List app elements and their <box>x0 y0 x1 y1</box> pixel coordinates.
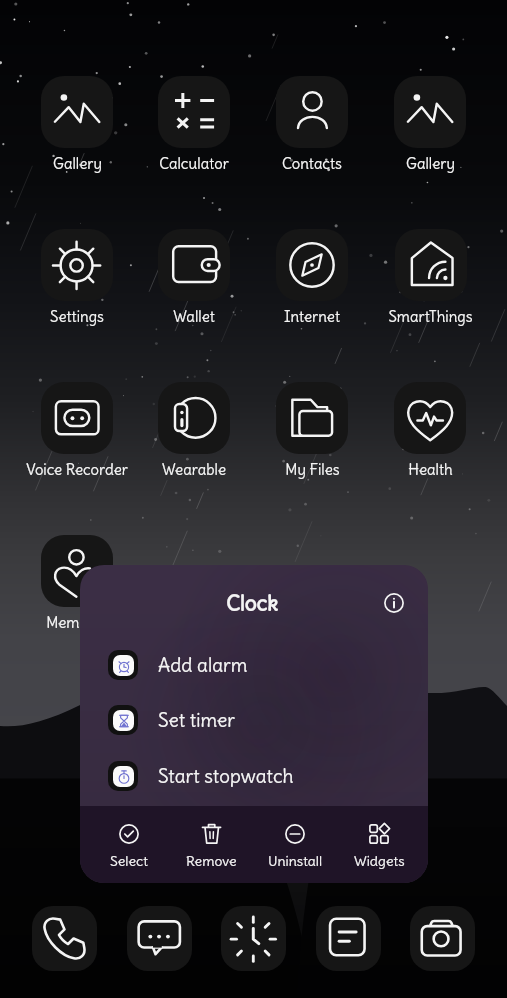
staticText: Contacts <box>282 154 342 173</box>
button[interactable]: Select <box>87 806 170 883</box>
button[interactable]: My Files <box>276 382 348 479</box>
button[interactable]: Start stopwatch <box>80 748 428 804</box>
button[interactable]: Widgets <box>337 806 421 883</box>
staticText: Uninstall <box>268 852 323 870</box>
staticText: SmartThings <box>388 307 473 326</box>
button[interactable]: Contacts <box>276 76 348 173</box>
button[interactable]: SmartThings <box>388 229 473 326</box>
button[interactable]: Wallet <box>158 229 230 326</box>
button[interactable]: Calculator <box>158 76 230 173</box>
staticText: Wearable <box>162 460 226 479</box>
button[interactable]: Gallery <box>394 76 466 173</box>
button[interactable]: Uninstall <box>253 806 337 883</box>
staticText: Start stopwatch <box>158 764 294 788</box>
button[interactable]: Remove <box>170 806 253 883</box>
staticText: Health <box>408 460 453 479</box>
button[interactable]: Add alarm <box>80 637 428 693</box>
button[interactable]: Voice Recorder <box>26 382 128 479</box>
button[interactable]: Internet <box>276 229 348 326</box>
button[interactable]: Notes <box>316 906 381 971</box>
button[interactable]: App info <box>380 589 408 617</box>
button[interactable]: Messages <box>127 906 192 971</box>
button[interactable]: Wearable <box>158 382 230 479</box>
button[interactable]: Gallery <box>41 76 113 173</box>
staticText: Remove <box>186 852 237 870</box>
staticText: Clock <box>226 590 278 616</box>
staticText: Calculator <box>159 154 229 173</box>
staticText: Add alarm <box>158 653 248 677</box>
staticText: Voice Recorder <box>26 460 128 479</box>
button[interactable]: Camera <box>410 906 475 971</box>
staticText: Wallet <box>173 307 215 326</box>
staticText: Set timer <box>158 708 236 732</box>
button[interactable]: Set timer <box>80 692 428 748</box>
button[interactable]: Health <box>394 382 466 479</box>
button[interactable]: Settings <box>41 229 113 326</box>
staticText: Members <box>46 613 109 632</box>
staticText: My Files <box>285 460 340 479</box>
staticText: Gallery <box>406 154 455 173</box>
button[interactable]: Members <box>41 535 113 632</box>
staticText: Gallery <box>53 154 102 173</box>
staticText: Select <box>110 852 148 870</box>
button[interactable]: Clock <box>221 906 286 971</box>
staticText: Settings <box>50 307 104 326</box>
staticText: Widgets <box>354 852 405 870</box>
button[interactable]: Phone <box>32 906 97 971</box>
staticText: Internet <box>284 307 340 326</box>
